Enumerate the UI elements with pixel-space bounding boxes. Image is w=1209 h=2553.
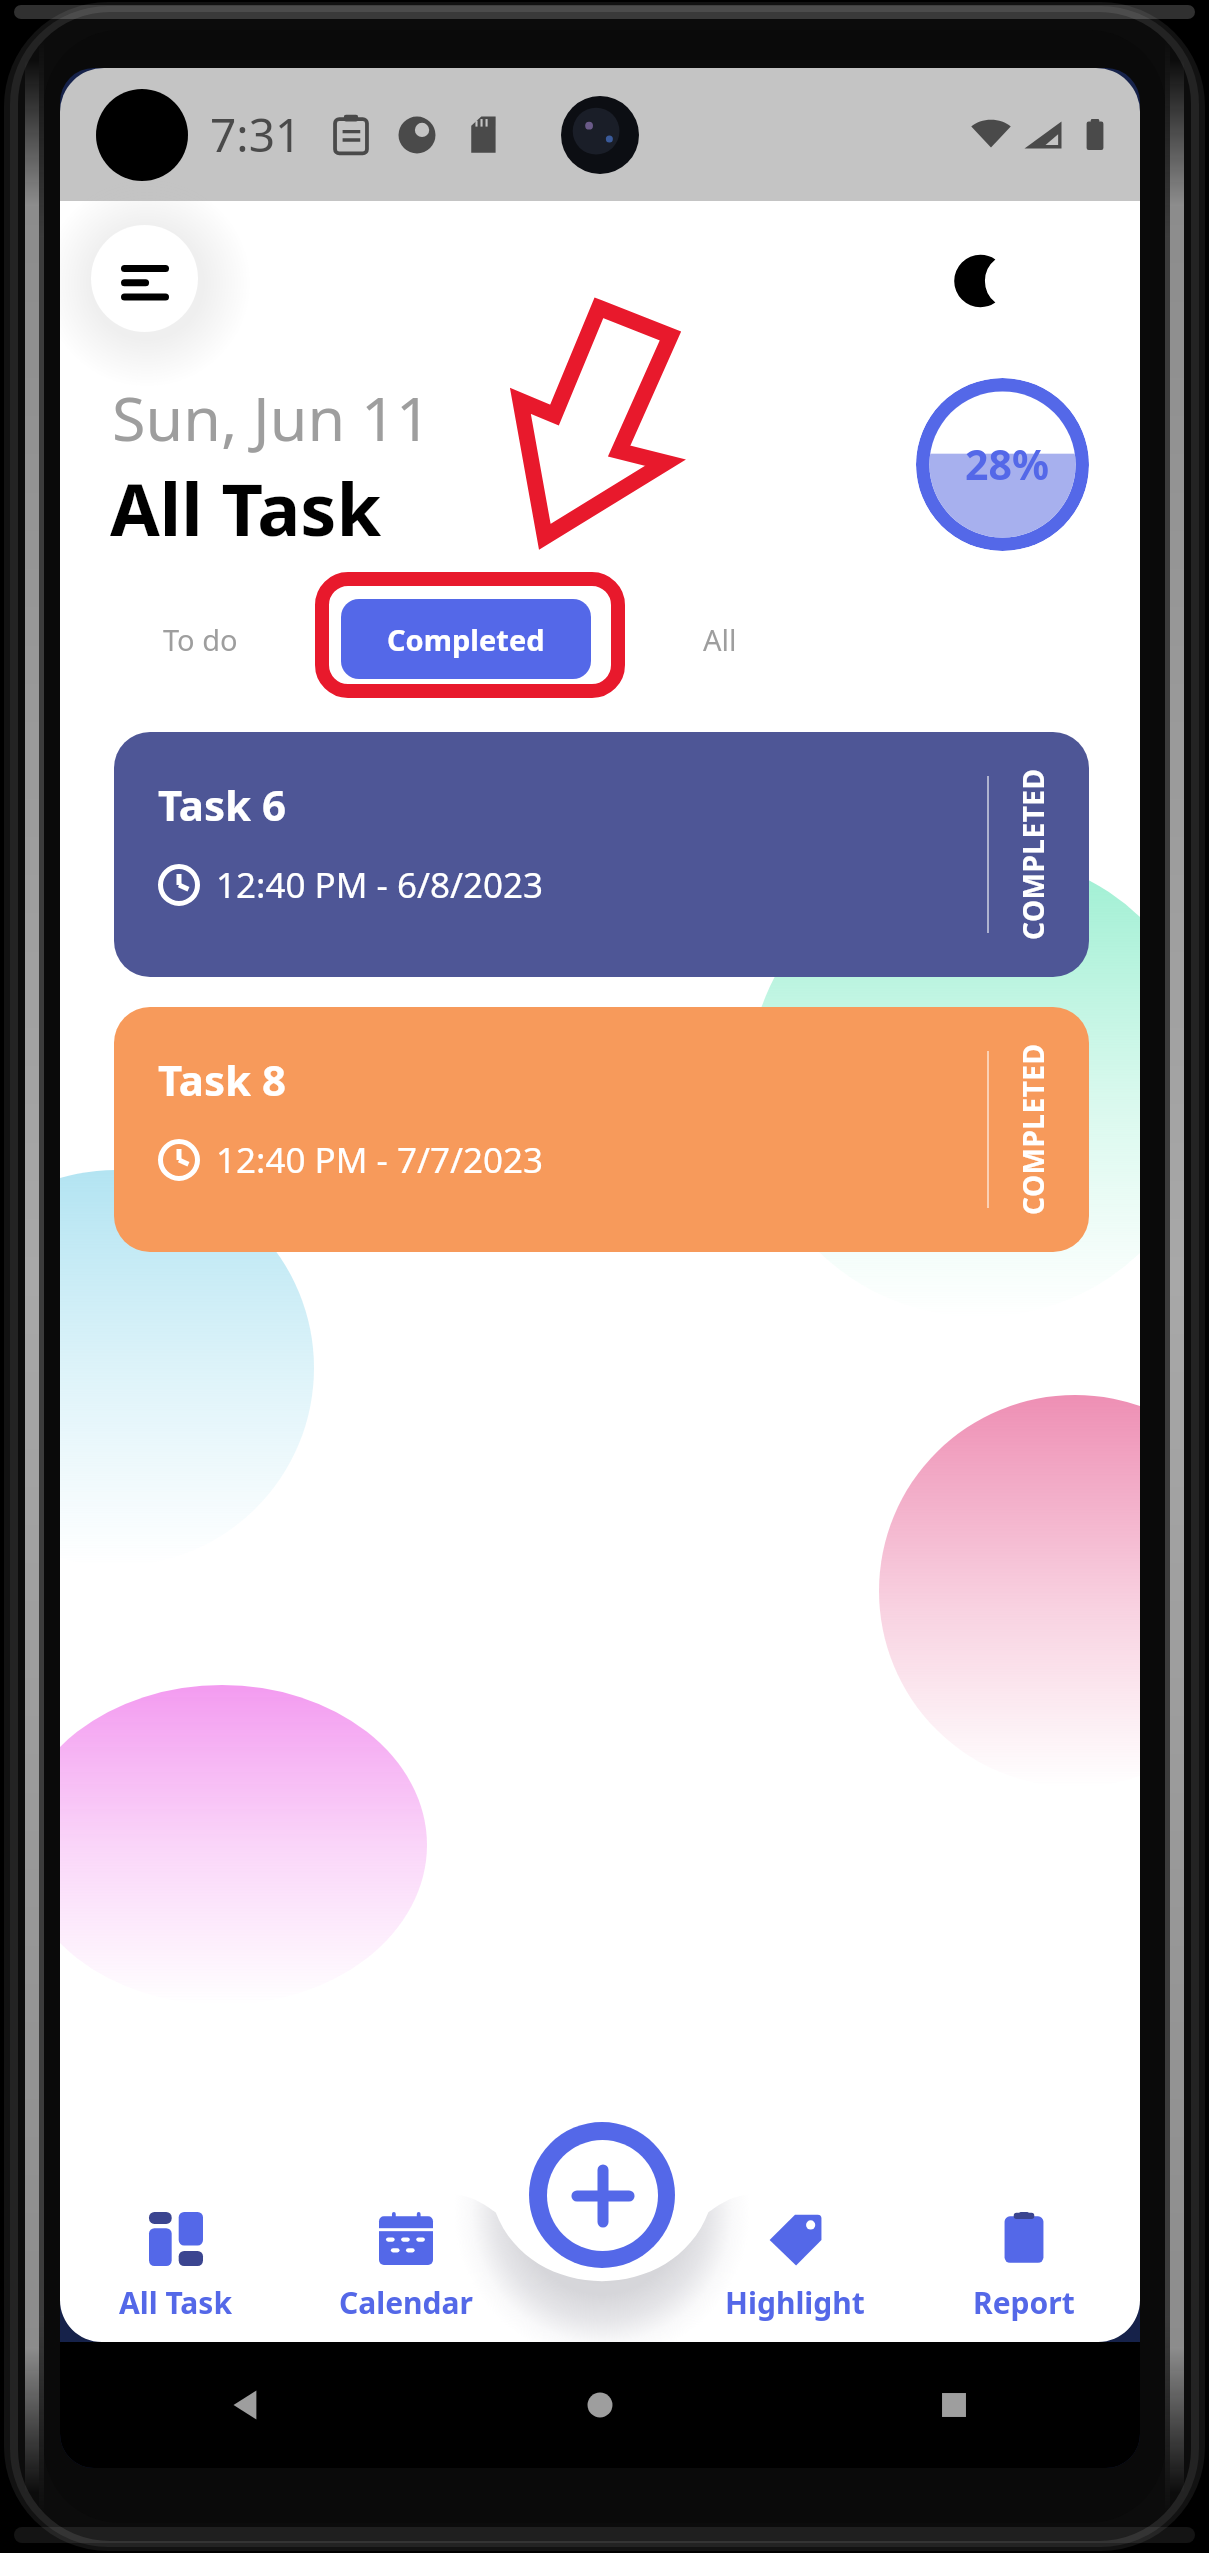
staticText: 7:31 [210, 103, 302, 166]
staticText: To do [163, 620, 238, 659]
button[interactable]: To do [120, 598, 280, 680]
button[interactable]: Task 8 [114, 1007, 1089, 1252]
staticText: Task 8 [158, 1051, 287, 1108]
staticText: Sun, Jun 11 [112, 376, 431, 459]
staticText: Completed [387, 620, 545, 659]
staticText: All Task [110, 459, 382, 557]
staticText: 28% [965, 436, 1049, 492]
staticText: COMPLETED [1014, 1043, 1052, 1215]
staticText: Calendar [339, 2282, 473, 2323]
button[interactable]: Calendar [296, 2212, 516, 2330]
button[interactable]: Report [914, 2212, 1134, 2330]
button[interactable]: Dark mode [923, 221, 1043, 341]
staticText: COMPLETED [1014, 768, 1052, 940]
button[interactable]: All Task [65, 2212, 285, 2330]
button[interactable]: Add task [529, 2122, 675, 2268]
button[interactable]: Menu [91, 225, 198, 332]
staticText: Report [973, 2282, 1075, 2323]
button[interactable]: Progress 28 percent [916, 378, 1089, 551]
staticText: 12:40 PM - 6/8/2023 [216, 861, 544, 909]
staticText: Task 6 [158, 776, 287, 833]
staticText: 12:40 PM - 7/7/2023 [216, 1136, 544, 1184]
button[interactable]: Task 6 [114, 732, 1089, 977]
button[interactable]: Completed [341, 599, 591, 679]
button[interactable]: All [640, 598, 800, 680]
button[interactable]: Highlight [685, 2212, 905, 2330]
staticText: Highlight [725, 2282, 865, 2323]
staticText: All Task [119, 2282, 232, 2323]
staticText: All [703, 620, 737, 659]
